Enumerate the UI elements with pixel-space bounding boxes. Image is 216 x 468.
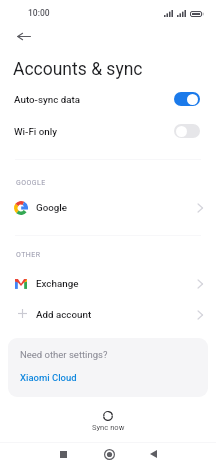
staticText: Add account (36, 309, 92, 320)
staticText: Google (36, 202, 68, 213)
button[interactable]: Back (140, 441, 166, 467)
other: Open (197, 279, 203, 289)
button[interactable]: Auto-sync data (0, 88, 216, 110)
button[interactable]: Wi-Fi only (0, 120, 216, 142)
button[interactable]: Back (11, 24, 36, 49)
other: Open (197, 203, 203, 213)
staticText: OTHER (16, 251, 41, 259)
staticText: GOOGLE (16, 179, 46, 187)
staticText: Need other settings? (20, 349, 108, 360)
button[interactable]: Google (0, 196, 216, 219)
button[interactable]: Sync now (0, 407, 216, 436)
staticText: Wi-Fi only (14, 126, 58, 137)
button[interactable]: Recents (50, 441, 76, 467)
button[interactable]: Home (96, 441, 122, 467)
staticText: Exchange (36, 278, 79, 289)
staticText: Xiaomi Cloud (20, 372, 77, 383)
other: Open (197, 310, 203, 320)
staticText: Sync now (92, 423, 125, 432)
button[interactable]: Add account (0, 303, 216, 326)
staticText: Auto-sync data (14, 94, 81, 105)
button[interactable]: Xiaomi Cloud (20, 372, 77, 383)
button[interactable]: Exchange (0, 272, 216, 295)
staticText: 10:00 (28, 8, 50, 18)
staticText: Accounts & sync (13, 59, 143, 80)
